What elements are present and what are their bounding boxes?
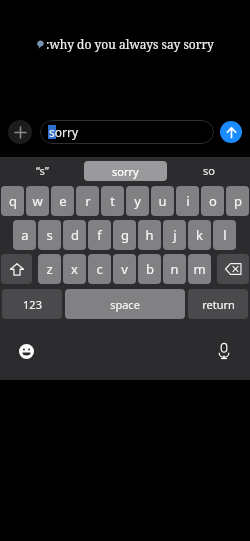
staticText: z xyxy=(46,260,53,278)
button[interactable]: c xyxy=(88,254,111,284)
button[interactable]: r xyxy=(76,186,99,216)
button[interactable]: Emoji xyxy=(14,339,38,363)
button[interactable]: a xyxy=(13,220,36,250)
staticText: k xyxy=(196,226,203,244)
staticText: sorry xyxy=(112,164,139,179)
button[interactable]: i xyxy=(176,186,199,216)
button[interactable]: 123 xyxy=(2,289,62,319)
staticText: h xyxy=(145,226,154,244)
button[interactable]: k xyxy=(188,220,211,250)
staticText: o xyxy=(209,192,217,210)
button[interactable]: b xyxy=(138,254,161,284)
staticText: l xyxy=(223,226,227,244)
staticText: f xyxy=(97,226,102,244)
button[interactable]: Shift xyxy=(1,254,32,284)
button[interactable]: z xyxy=(38,254,61,284)
staticText: q xyxy=(9,192,17,210)
button[interactable]: u xyxy=(151,186,174,216)
staticText: “s” xyxy=(36,163,49,178)
staticText: 123 xyxy=(23,297,42,312)
staticText: j xyxy=(173,226,177,244)
staticText: d xyxy=(71,226,79,244)
staticText: t xyxy=(110,192,115,210)
button[interactable]: x xyxy=(63,254,86,284)
button[interactable]: m xyxy=(188,254,211,284)
staticText: g xyxy=(121,226,129,244)
staticText: s xyxy=(46,226,53,244)
button[interactable]: d xyxy=(63,220,86,250)
button[interactable]: Send xyxy=(220,121,242,143)
staticText: p xyxy=(234,192,242,210)
button[interactable]: so xyxy=(167,157,250,184)
button[interactable]: “s” xyxy=(0,157,84,184)
button[interactable]: y xyxy=(126,186,149,216)
staticText: e xyxy=(59,192,67,210)
staticText: n xyxy=(170,260,179,278)
staticText: m xyxy=(193,260,206,278)
button[interactable]: h xyxy=(138,220,161,250)
staticText: x xyxy=(71,260,78,278)
staticText: c xyxy=(96,260,103,278)
staticText: so xyxy=(203,163,215,178)
button[interactable]: f xyxy=(88,220,111,250)
button[interactable]: t xyxy=(101,186,124,216)
staticText: v xyxy=(121,260,128,278)
staticText: :why do you always say sorry xyxy=(46,36,214,52)
button[interactable]: return xyxy=(188,289,248,319)
button[interactable]: v xyxy=(113,254,136,284)
staticText: sorry xyxy=(49,124,79,140)
button[interactable]: l xyxy=(213,220,236,250)
button[interactable]: Backspace xyxy=(217,254,249,284)
button[interactable]: sorry xyxy=(40,120,214,144)
button[interactable]: n xyxy=(163,254,186,284)
staticText: i xyxy=(186,192,190,210)
staticText: a xyxy=(21,226,29,244)
button[interactable]: Add attachment xyxy=(8,120,32,144)
button[interactable]: j xyxy=(163,220,186,250)
button[interactable]: o xyxy=(201,186,224,216)
staticText: b xyxy=(146,260,154,278)
staticText: r xyxy=(85,192,91,210)
button[interactable]: Voice input xyxy=(212,339,236,363)
button[interactable]: g xyxy=(113,220,136,250)
button[interactable]: q xyxy=(1,186,24,216)
staticText: u xyxy=(158,192,167,210)
staticText: space xyxy=(110,297,140,312)
button[interactable]: e xyxy=(51,186,74,216)
button[interactable]: w xyxy=(26,186,49,216)
button[interactable]: space xyxy=(65,289,185,319)
staticText: w xyxy=(32,192,43,210)
staticText: return xyxy=(202,297,235,312)
button[interactable]: s xyxy=(38,220,61,250)
button[interactable]: p xyxy=(226,186,249,216)
button[interactable]: sorry xyxy=(84,161,167,181)
staticText: y xyxy=(134,192,141,210)
